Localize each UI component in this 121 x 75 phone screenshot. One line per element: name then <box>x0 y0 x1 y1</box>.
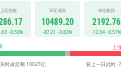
staticText: 2192.76 <box>84 17 121 27</box>
staticText: -7% <box>117 61 121 68</box>
staticText: 实时成交额 10027亿 <box>0 61 46 68</box>
staticText: 上证指数 <box>0 8 31 13</box>
staticText: 下跌 1852家 <box>0 43 3 50</box>
staticText: -12.54 -0.51% <box>84 29 121 35</box>
staticText: 深证成指 <box>35 8 80 13</box>
staticText: -16.63 -0.50% <box>0 29 31 35</box>
staticText: 较上一日此时 <box>86 61 116 67</box>
staticText: 创业板指 <box>84 8 121 13</box>
button[interactable]: 创业板指 <box>84 1 121 37</box>
staticText: 10489.20 <box>35 17 80 27</box>
staticText: 3286.17 <box>0 17 31 27</box>
button[interactable]: 深证成指 <box>35 1 80 37</box>
staticText: 上涨 2741家 <box>112 44 121 51</box>
staticText: -87.21 -0.82% <box>35 29 80 35</box>
button[interactable]: 上证指数 <box>0 1 31 37</box>
